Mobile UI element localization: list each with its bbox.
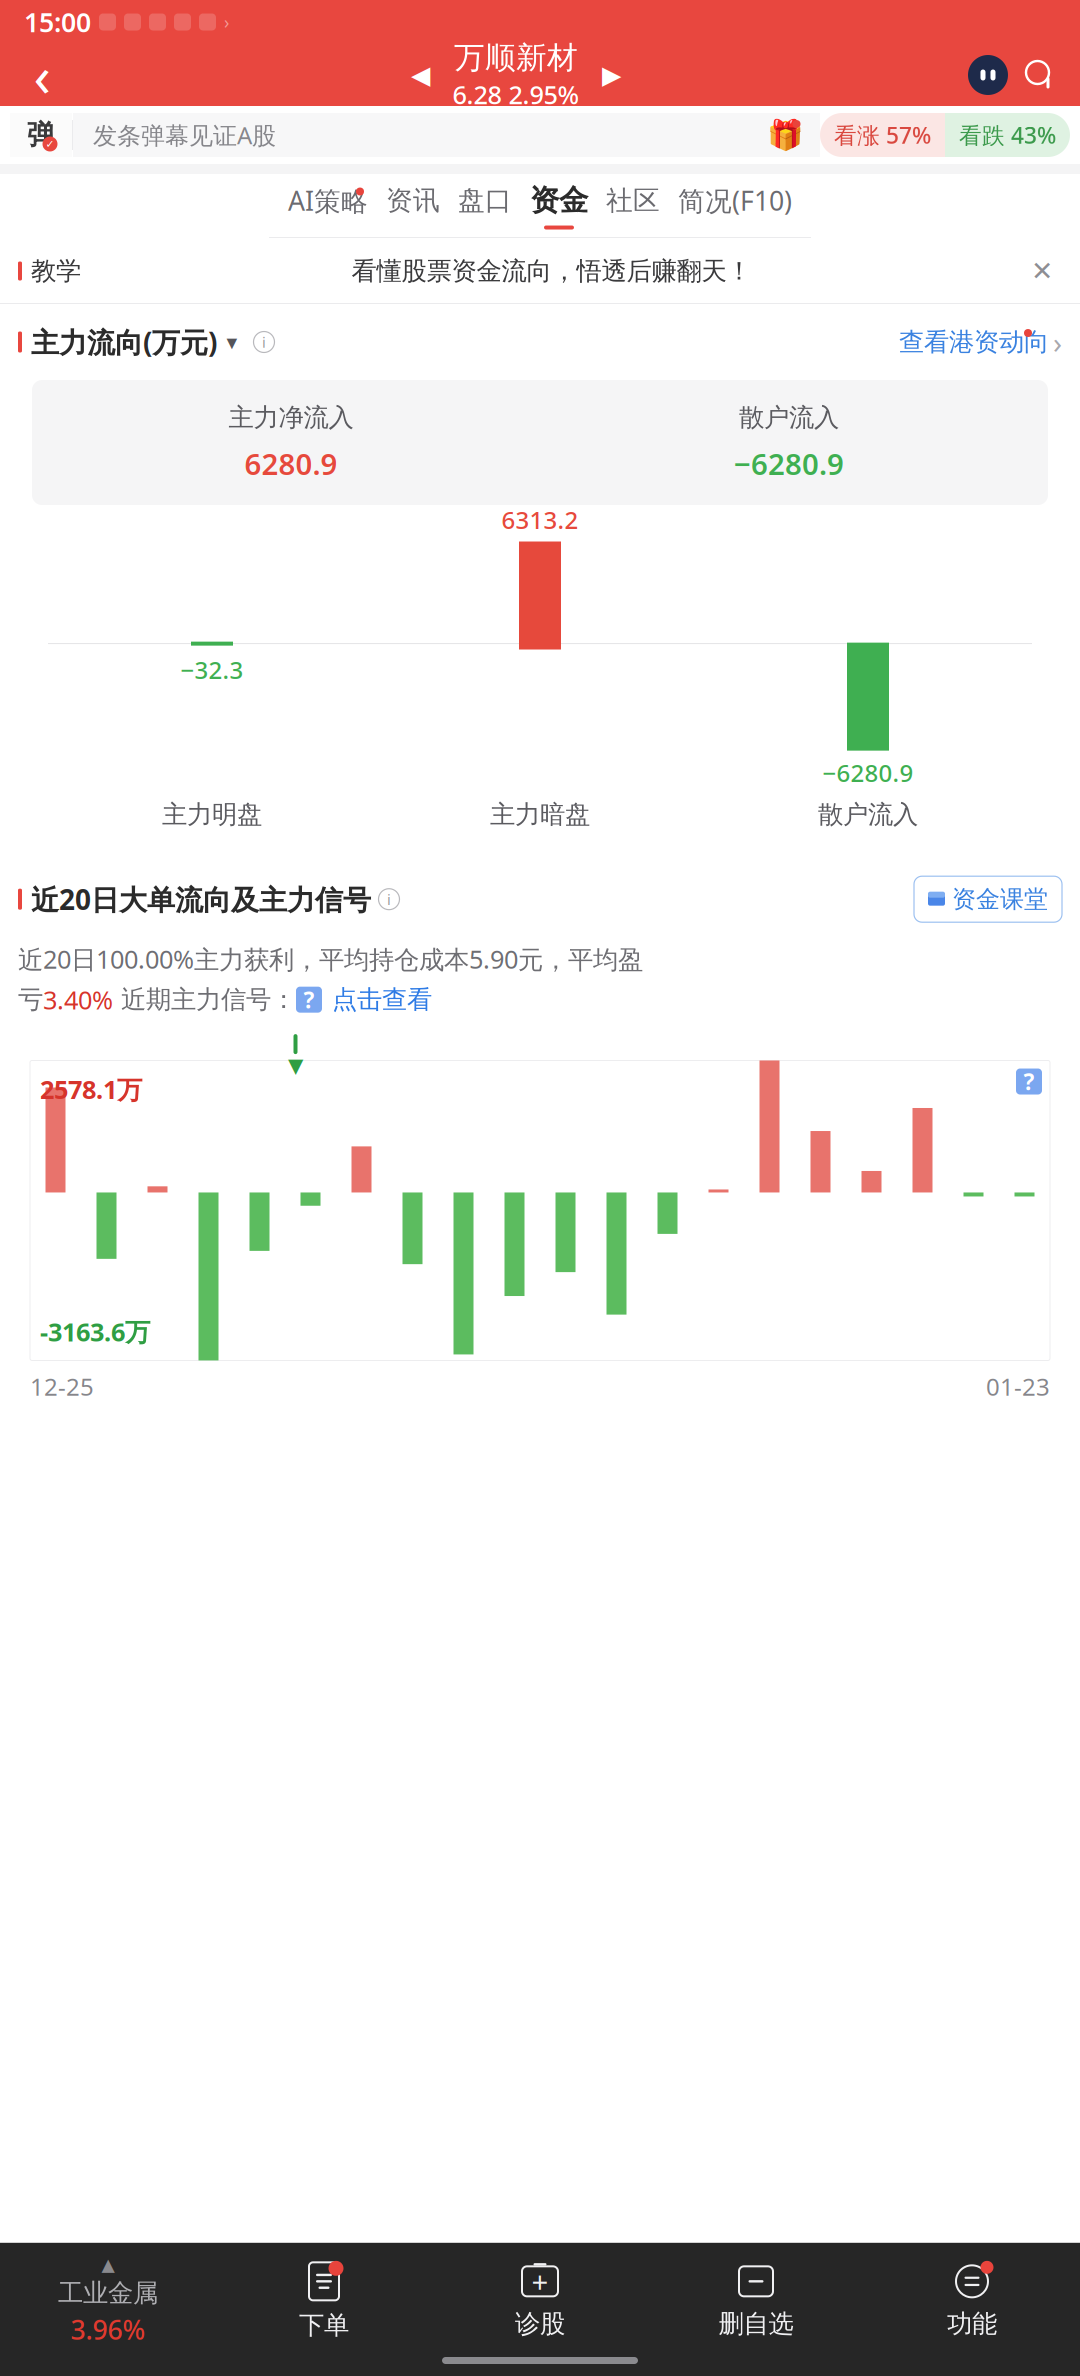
staticText: 资金 (530, 182, 588, 218)
staticText: 看跌 43% (959, 120, 1056, 150)
staticText: 主力明盘 (162, 799, 262, 830)
button[interactable]: 看涨 57% (820, 113, 945, 157)
button[interactable]: 资金课堂 (914, 876, 1062, 922)
staticText: 近期主力信号： (113, 984, 296, 1015)
staticText: ? (1023, 1066, 1034, 1097)
staticText: −32.3 (180, 654, 243, 685)
staticText: › (224, 10, 229, 33)
staticText: 功能 (947, 2308, 997, 2339)
staticText: ▶ (602, 61, 621, 89)
button[interactable]: Barrage (10, 113, 72, 157)
staticText: ▲ (101, 2255, 114, 2274)
staticText: 看涨 57% (834, 120, 931, 150)
staticText: 3.40% (43, 983, 113, 1016)
staticText: ▾ (226, 330, 237, 354)
staticText: 资讯 (386, 184, 440, 217)
button[interactable]: 盘口 (449, 174, 521, 238)
button[interactable]: Information (371, 881, 407, 917)
staticText: 简况(F10) (678, 183, 792, 218)
staticText: 01-23 (986, 1370, 1050, 1402)
button[interactable]: AI assistant (962, 49, 1014, 101)
button[interactable]: 看跌 43% (945, 113, 1070, 157)
staticText: −6280.9 (734, 444, 844, 483)
staticText: 散户流入 (818, 799, 918, 830)
staticText: › (1053, 322, 1062, 361)
button[interactable]: 功能 (864, 2262, 1080, 2339)
staticText: 资金课堂 (952, 884, 1048, 914)
button[interactable]: 点击查看 (322, 984, 432, 1015)
staticText: 删自选 (718, 2308, 793, 2339)
staticText: 主力暗盘 (490, 799, 590, 830)
staticText: 看懂股票资金流向，悟透后赚翻天！ (351, 255, 751, 286)
button[interactable]: 简况(F10) (669, 174, 801, 238)
button[interactable]: 查看港资动向 (899, 322, 1062, 361)
staticText: ? (303, 985, 314, 1015)
staticText: 亏 (18, 984, 43, 1015)
staticText: −6280.9 (822, 757, 913, 788)
staticText: ✕ (1031, 256, 1053, 286)
button[interactable]: + (432, 2262, 648, 2339)
button[interactable]: Help (1016, 1066, 1042, 1097)
staticText: -3163.6万 (40, 1315, 150, 1348)
staticText: 弹 (27, 118, 55, 152)
staticText: 查看港资动向 (899, 326, 1049, 357)
staticText: AI策略 (288, 183, 368, 218)
button[interactable]: ▲ (0, 2255, 216, 2347)
staticText: 主力流向(万元) (31, 323, 217, 361)
staticText: 诊股 (515, 2308, 565, 2339)
button[interactable]: Close (1022, 251, 1062, 291)
staticText: 主力净流入 (228, 402, 353, 433)
staticText: 🎁 (767, 118, 804, 152)
staticText: 3.96% (70, 2312, 145, 2347)
staticText: i (262, 332, 266, 352)
staticText: 近20日100.00%主力获利，平均持仓成本5.90元，平均盈 (18, 942, 643, 976)
staticText: 12-25 (30, 1370, 94, 1402)
staticText: 近20日大单流向及主力信号 (31, 881, 371, 918)
button[interactable]: Back (14, 47, 70, 103)
button[interactable]: Search (1014, 49, 1066, 101)
button[interactable]: 下单 (216, 2261, 432, 2341)
staticText: 社区 (606, 184, 660, 217)
staticText: 6.28 2.95% (452, 77, 579, 111)
staticText: 6313.2 (501, 504, 578, 535)
staticText: ✓ (45, 138, 54, 150)
staticText: 2578.1万 (40, 1072, 142, 1106)
button[interactable]: 资金 (521, 174, 597, 238)
button[interactable]: 社区 (597, 174, 669, 238)
staticText: 6280.9 (244, 444, 337, 483)
staticText: ▼ (288, 1054, 303, 1077)
button[interactable]: 发条弹幕见证A股 (73, 113, 820, 157)
staticText: 15:00 (24, 4, 91, 40)
staticText: + (531, 2262, 548, 2301)
staticText: 点击查看 (332, 984, 432, 1015)
button[interactable]: Previous stock (398, 53, 442, 97)
staticText: 盘口 (458, 184, 512, 217)
button[interactable]: Next stock (589, 53, 633, 97)
staticText: ◀ (411, 61, 430, 89)
button[interactable]: AI策略 (279, 174, 377, 238)
button[interactable]: Change unit (217, 327, 247, 357)
staticText: 发条弹幕见证A股 (93, 119, 276, 151)
staticText: 万顺新材 (454, 39, 578, 76)
staticText: i (387, 889, 391, 909)
button[interactable]: 删自选 (648, 2262, 864, 2339)
staticText: 工业金属 (58, 2277, 158, 2309)
button[interactable]: 资讯 (377, 174, 449, 238)
staticText: 教学 (31, 255, 81, 286)
staticText: 下单 (299, 2310, 349, 2341)
staticText: ‹ (33, 38, 50, 112)
staticText: 散户流入 (739, 402, 839, 433)
button[interactable]: Information (247, 325, 281, 359)
